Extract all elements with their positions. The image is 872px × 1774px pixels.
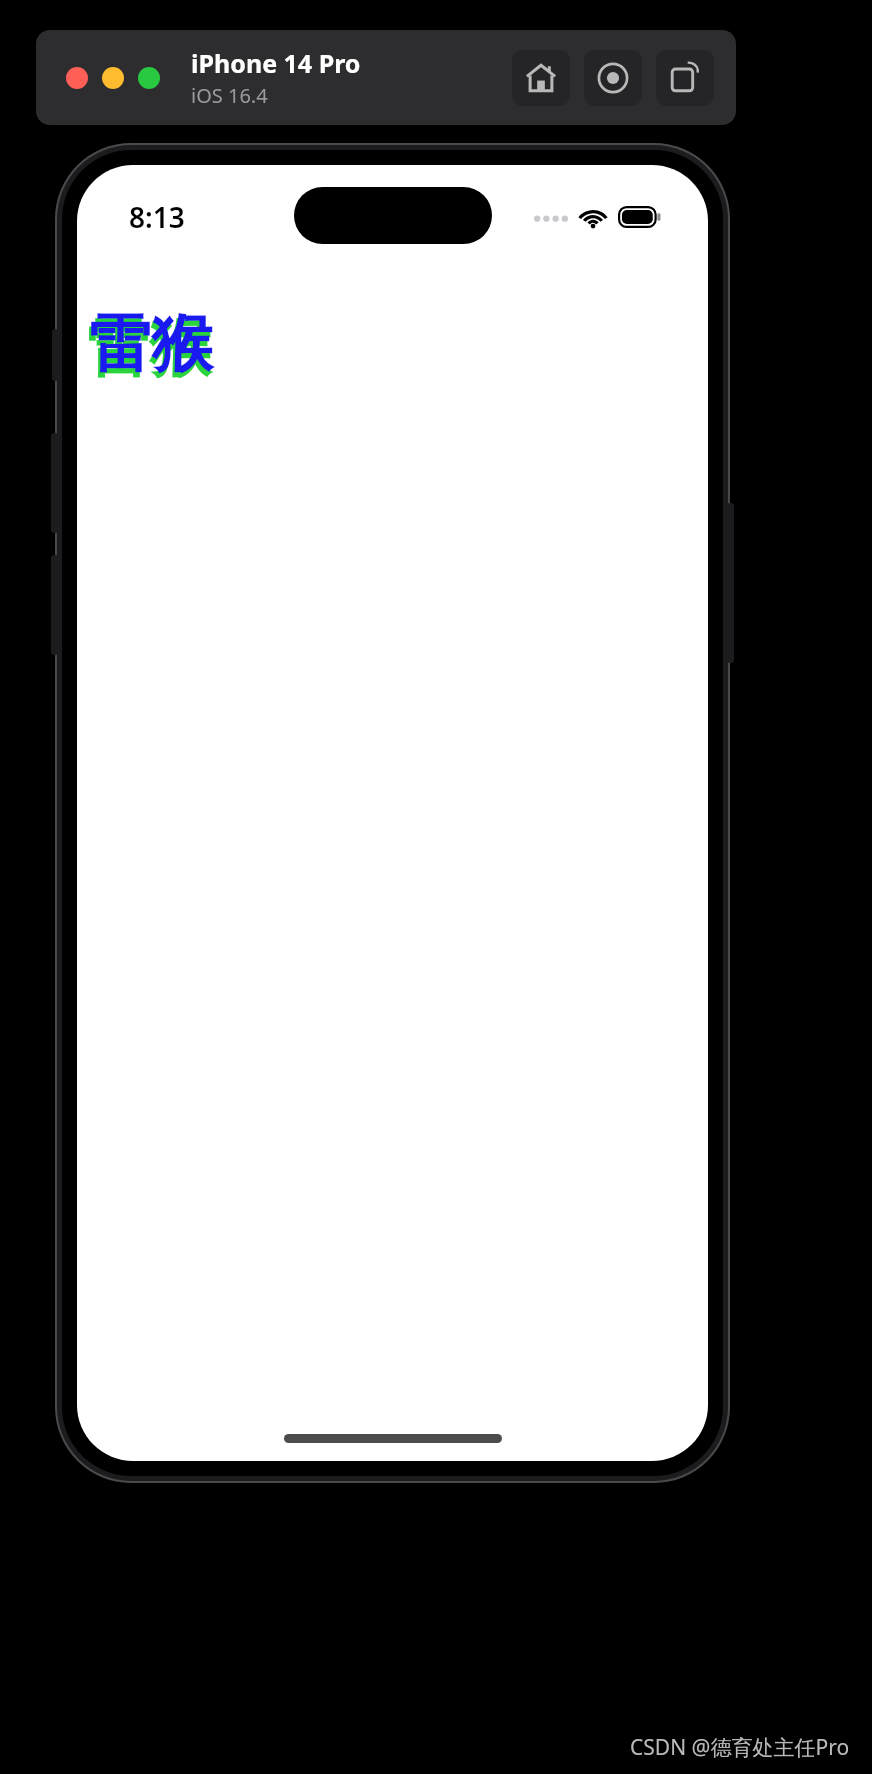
staticText: 雷猴 <box>89 305 213 383</box>
staticText: iOS 16.4 <box>191 82 268 109</box>
button[interactable]: Rotate device <box>656 50 714 106</box>
staticText: 8:13 <box>129 198 185 236</box>
staticText: 雷猴 <box>87 310 211 388</box>
button[interactable]: Minimise <box>102 67 124 89</box>
button[interactable]: Zoom <box>138 67 160 89</box>
button[interactable]: Record screen <box>584 50 642 106</box>
button[interactable]: Home <box>512 50 570 106</box>
staticText: iPhone 14 Pro <box>191 46 361 80</box>
staticText: CSDN @德育处主任Pro <box>630 1733 850 1762</box>
button[interactable]: Close <box>66 67 88 89</box>
